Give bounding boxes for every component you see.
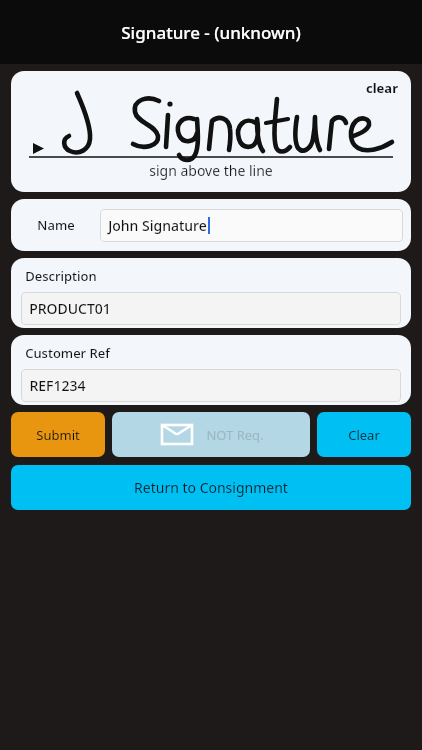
staticText: Description — [25, 267, 97, 285]
button[interactable]: Email not required — [112, 412, 310, 457]
button[interactable]: Return to Consignment — [11, 465, 411, 510]
staticText: clear — [366, 79, 398, 97]
button[interactable]: Submit — [11, 412, 105, 457]
staticText: Submit — [36, 426, 80, 444]
button[interactable]: John Signature — [100, 209, 403, 242]
staticText: Signature - (unknown) — [121, 21, 301, 44]
staticText: John Signature — [108, 216, 207, 235]
button[interactable]: PRODUCT01 — [21, 292, 401, 325]
button[interactable]: REF1234 — [21, 369, 401, 402]
staticText: PRODUCT01 — [29, 299, 111, 318]
staticText: REF1234 — [29, 376, 86, 395]
staticText: Clear — [348, 426, 380, 444]
staticText: Return to Consignment — [134, 478, 288, 497]
staticText: Customer Ref — [25, 344, 110, 362]
staticText: Name — [37, 216, 75, 234]
button[interactable]: Clear — [317, 412, 411, 457]
button[interactable]: clear — [363, 77, 401, 99]
staticText: sign above the line — [149, 161, 273, 180]
button[interactable]: clear — [11, 71, 411, 192]
staticText: NOT Req. — [206, 426, 264, 444]
